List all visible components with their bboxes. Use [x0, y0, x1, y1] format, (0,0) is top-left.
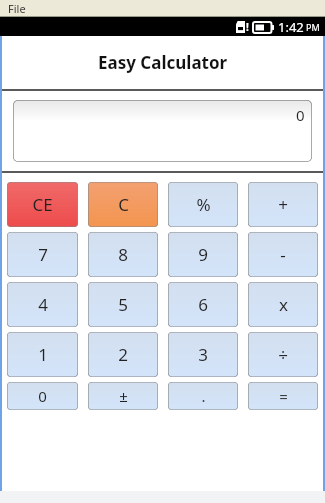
button[interactable]: ± — [88, 382, 158, 410]
staticText: Easy Calculator — [98, 51, 228, 74]
button[interactable]: - — [248, 232, 318, 277]
staticText: % — [196, 193, 211, 216]
staticText: 9 — [198, 243, 208, 266]
staticText: 0 — [38, 386, 47, 406]
staticText: 8 — [118, 243, 128, 266]
staticText: ÷ — [278, 343, 288, 366]
button[interactable]: 0 — [7, 382, 78, 410]
staticText: x — [279, 293, 288, 316]
button[interactable]: 6 — [168, 282, 238, 327]
staticText: + — [278, 193, 288, 216]
button[interactable]: 3 — [168, 332, 238, 377]
button[interactable]: + — [248, 182, 318, 227]
staticText: ± — [119, 386, 128, 406]
staticText: 5 — [118, 293, 128, 316]
button[interactable]: C — [88, 182, 158, 227]
staticText: PM — [306, 21, 320, 33]
staticText: - — [280, 243, 286, 266]
staticText: 4 — [38, 293, 48, 316]
staticText: 0 — [296, 105, 305, 125]
button[interactable]: = — [248, 382, 318, 410]
button[interactable]: . — [168, 382, 238, 410]
button[interactable]: 2 — [88, 332, 158, 377]
button[interactable]: 8 — [88, 232, 158, 277]
staticText: 1 — [38, 343, 48, 366]
button[interactable]: x — [248, 282, 318, 327]
button[interactable]: 7 — [7, 232, 78, 277]
button[interactable]: 5 — [88, 282, 158, 327]
staticText: = — [279, 386, 288, 406]
button[interactable]: 1 — [7, 332, 78, 377]
button[interactable]: 0 — [13, 100, 312, 162]
staticText: 2 — [118, 343, 128, 366]
staticText: ! — [246, 20, 249, 34]
staticText: CE — [32, 193, 53, 216]
button[interactable]: ÷ — [248, 332, 318, 377]
staticText: 1:42 — [278, 18, 304, 36]
staticText: C — [118, 193, 129, 216]
staticText: 3 — [198, 343, 208, 366]
button[interactable]: 4 — [7, 282, 78, 327]
staticText: 7 — [38, 243, 48, 266]
button[interactable]: CE — [7, 182, 78, 227]
button[interactable]: 9 — [168, 232, 238, 277]
staticText: 6 — [198, 293, 208, 316]
staticText: . — [201, 386, 206, 406]
staticText: File — [8, 1, 26, 16]
button[interactable]: % — [168, 182, 238, 227]
